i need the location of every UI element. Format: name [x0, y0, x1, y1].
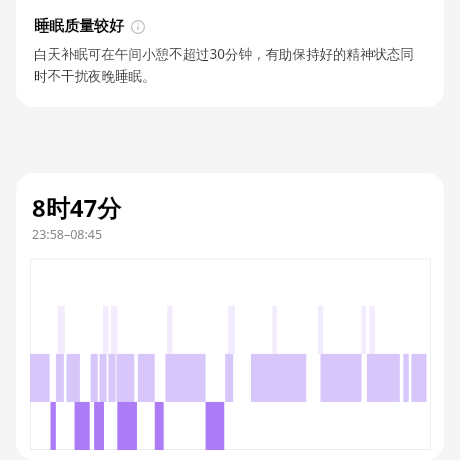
staticText: 23:58–08:45	[32, 226, 103, 243]
staticText: 白天补眠可在午间小憩不超过30分钟，有助保持好的精神状态同时不干扰夜晚睡眠。	[34, 45, 426, 85]
staticText: 8时47分	[32, 191, 122, 224]
staticText: 睡眠质量较好	[34, 17, 124, 36]
button[interactable]: 8时47分	[16, 173, 444, 460]
button[interactable]: 8时47分	[16, 0, 444, 107]
button[interactable]: 说明	[131, 20, 145, 34]
